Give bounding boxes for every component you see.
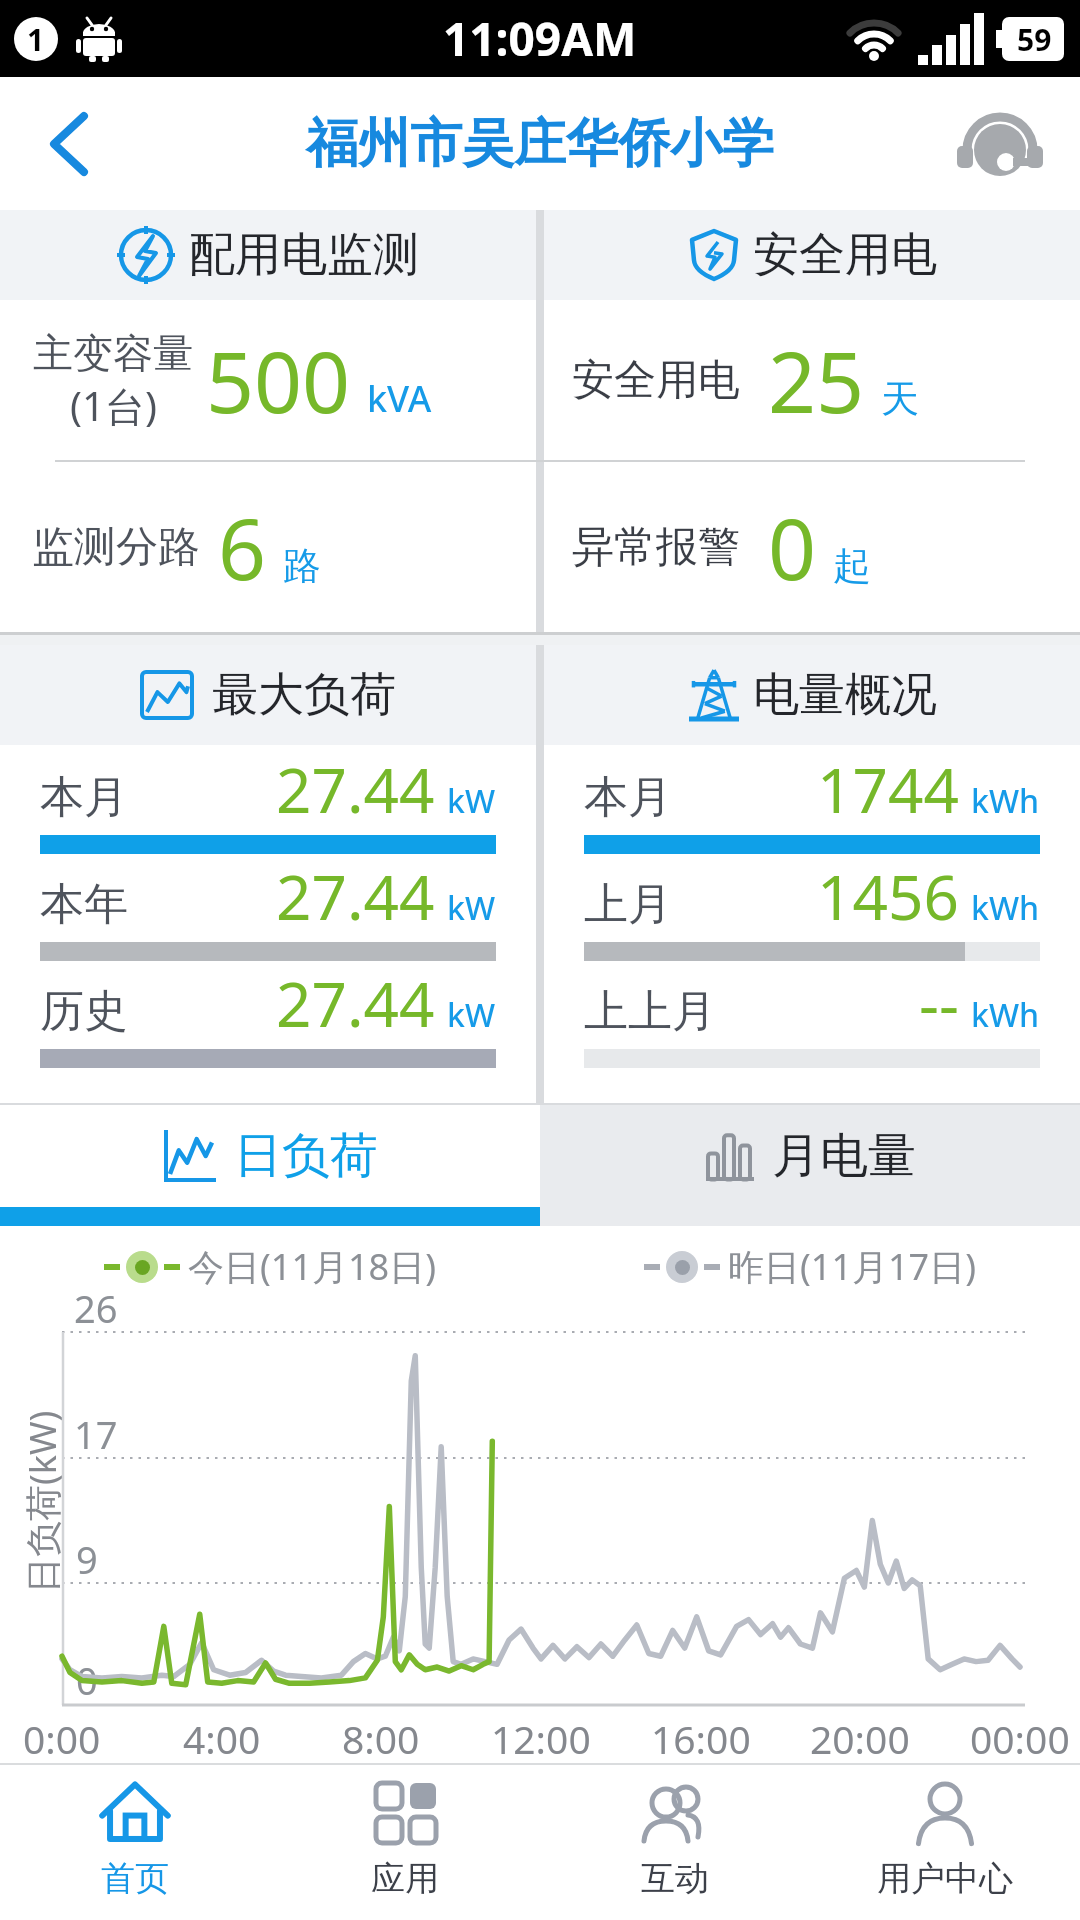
staticText: kW (447, 886, 496, 930)
staticText: kW (447, 993, 496, 1037)
staticText: 主变容量 (33, 328, 193, 378)
staticText: kW (447, 779, 496, 823)
staticText: 59 (1017, 19, 1052, 60)
staticText: 互动 (641, 1857, 709, 1900)
button[interactable]: 上上月 (584, 961, 1040, 1068)
staticText: kWh (971, 993, 1040, 1037)
staticText: 8:00 (342, 1712, 420, 1765)
staticText: 本年 (40, 877, 128, 932)
staticText: 福州市吴庄华侨小学 (306, 111, 774, 177)
staticText: 监测分路 (32, 521, 200, 574)
staticText: 1456 (817, 854, 959, 938)
button[interactable]: 安全用电 (544, 210, 1080, 300)
button[interactable]: 安全用电 (544, 300, 1080, 460)
staticText: (1台) (70, 378, 157, 433)
staticText: 11:09AM (443, 7, 637, 70)
staticText: 日负荷(kW) (18, 1410, 62, 1593)
staticText: 9 (76, 1533, 98, 1585)
staticText: 27.44 (276, 961, 435, 1045)
staticText: 今日(11月18日) (188, 1242, 436, 1291)
button[interactable]: 电量概况 (544, 645, 1080, 745)
button[interactable]: 主变容量 (0, 300, 536, 460)
staticText: 本月 (40, 770, 128, 825)
button[interactable]: 最大负荷 (0, 645, 536, 745)
button[interactable]: 月电量 (540, 1105, 1080, 1226)
staticText: 0 (76, 1654, 98, 1706)
staticText: 上上月 (584, 984, 716, 1039)
staticText: 本月 (584, 770, 672, 825)
staticText: 日负荷 (234, 1126, 378, 1186)
staticText: 首页 (101, 1857, 169, 1900)
staticText: kVA (367, 374, 432, 423)
button[interactable]: 异常报警 (544, 462, 1080, 632)
staticText: 16:00 (651, 1712, 751, 1765)
staticText: 12:00 (491, 1712, 591, 1765)
staticText: 27.44 (276, 854, 435, 938)
button[interactable] (30, 104, 110, 184)
button[interactable]: 用户中心 (810, 1765, 1080, 1920)
staticText: 电量概况 (753, 666, 937, 724)
button[interactable]: 本月 (40, 747, 496, 854)
button[interactable]: 日负荷 (0, 1105, 540, 1226)
staticText: 用户中心 (877, 1857, 1013, 1900)
button[interactable]: 上月 (584, 854, 1040, 961)
staticText: 20:00 (810, 1712, 910, 1765)
staticText: 26 (74, 1282, 118, 1334)
staticText: 上月 (584, 877, 672, 932)
staticText: 6 (218, 490, 267, 604)
staticText: kWh (971, 779, 1040, 823)
button[interactable]: 首页 (0, 1765, 270, 1920)
staticText: kWh (971, 886, 1040, 930)
staticText: 起 (833, 542, 871, 590)
staticText: 0:00 (23, 1712, 101, 1765)
staticText: 安全用电 (753, 226, 937, 284)
staticText: 1744 (817, 747, 959, 831)
button[interactable]: 本年 (40, 854, 496, 961)
staticText: 天 (881, 375, 919, 423)
staticText: 25 (768, 323, 865, 437)
staticText: 历史 (40, 984, 128, 1039)
button[interactable]: 历史 (40, 961, 496, 1068)
staticText: 500 (206, 323, 351, 437)
staticText: 0 (768, 490, 817, 604)
staticText: 月电量 (772, 1126, 916, 1186)
staticText: 17 (74, 1408, 118, 1460)
staticText: 安全用电 (572, 354, 740, 407)
staticText: -- (919, 961, 959, 1045)
staticText: 异常报警 (572, 521, 740, 574)
button[interactable]: 互动 (540, 1765, 810, 1920)
staticText: 路 (283, 542, 321, 590)
button[interactable] (954, 98, 1046, 190)
button[interactable]: 监测分路 (0, 462, 536, 632)
staticText: 27.44 (276, 747, 435, 831)
staticText: 4:00 (183, 1712, 261, 1765)
staticText: 00:00 (970, 1712, 1070, 1765)
staticText: 1 (27, 19, 45, 60)
staticText: 配用电监测 (189, 226, 419, 284)
button[interactable]: 配用电监测 (0, 210, 536, 300)
staticText: 昨日(11月17日) (728, 1242, 976, 1291)
button[interactable]: 应用 (270, 1765, 540, 1920)
button[interactable]: 本月 (584, 747, 1040, 854)
staticText: 应用 (371, 1857, 439, 1900)
staticText: 最大负荷 (212, 666, 396, 724)
